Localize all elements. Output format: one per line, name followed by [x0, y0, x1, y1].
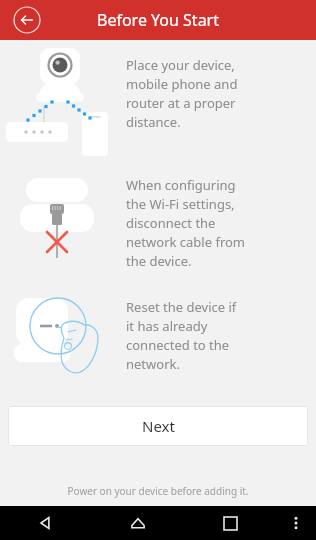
button[interactable]: Next — [8, 406, 308, 446]
staticText: Before You Start — [97, 9, 219, 31]
staticText: Place your device, mobile phone and rout… — [126, 56, 238, 131]
staticText: Power on your device before adding it. — [0, 484, 316, 498]
staticText: When configuring the Wi-Fi settings, dis… — [126, 176, 246, 270]
button[interactable]: Recent apps — [184, 506, 276, 540]
button[interactable]: Back — [12, 5, 42, 35]
staticText: Next — [142, 416, 175, 436]
staticText: Reset the device if it has already conne… — [126, 298, 237, 373]
button[interactable]: More options — [276, 506, 316, 540]
button[interactable]: Home — [92, 506, 184, 540]
button[interactable]: Back — [0, 506, 92, 540]
